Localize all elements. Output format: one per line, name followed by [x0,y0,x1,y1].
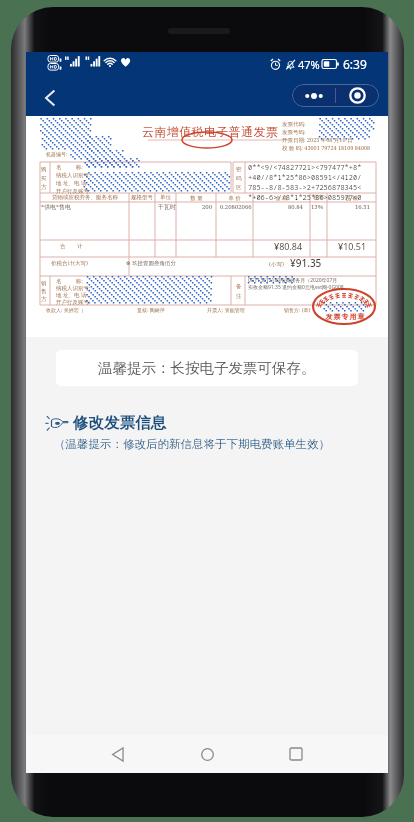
staticText: 金 额 [275,194,288,202]
staticText: 16.51 [355,203,370,211]
staticText: 货物或应税劳务、服务名称 [52,194,118,201]
staticText: 开户行及账号: [56,187,91,195]
staticText: 云南增值税电子普通发票 [142,124,279,139]
staticText: 千瓦时 [158,203,176,211]
staticText: ¥80.84 [274,240,303,252]
staticText: 区 [236,184,242,191]
staticText: 方 [41,296,47,303]
staticText: 名 称: [56,163,83,171]
staticText: 发票代码: [282,120,306,128]
staticText: 数 量 [190,194,203,202]
staticText: 开票人: 资能管理 [207,307,245,314]
staticText: *供电*售电 [41,203,72,211]
staticText: 发票专用章 [325,312,365,321]
staticText: 售 [41,288,47,295]
staticText: 注 [236,293,242,300]
staticText: 实收金额91.35 退约金额0元电evt网-0G008 [248,284,344,291]
staticText: 开票日期: 2023 年08 月10 日 [282,136,353,144]
staticText: 发票号码: [282,128,306,136]
staticText: 密 [236,166,242,173]
staticText: +40//8*1*25*86>08591</4120/ [248,173,362,183]
staticText: 价税合计(大写) [51,259,88,267]
staticText: 单位 [160,194,171,201]
staticText: 名 称: [56,277,83,285]
staticText: 0**<9/<74827721><797477*+8* [248,163,362,173]
staticText: 地 址、电 话: [56,179,88,187]
staticText: 校 验 码: 43001 79724 18109 84008 [282,144,371,152]
staticText: 地 址、电 话: [56,291,88,299]
button[interactable]: 修改发票信息 [48,413,166,433]
staticText: 备 [236,283,242,290]
staticText: 税率 [313,194,324,201]
staticText: 税 额 [345,194,358,202]
staticText: *+06-6>//8*1*25*86>085977<0 [248,193,362,203]
staticText: ¥91.35 [290,256,322,270]
staticText: 200 [202,203,213,211]
staticText: 47% [298,57,320,72]
button[interactable]: Back [96,735,140,773]
staticText: 0.20802066 [220,203,252,211]
staticText: 开户行及账号: [56,298,91,306]
staticText: 785--8/8-583->2+7256878345< [248,183,362,193]
staticText: 收款人: 吴婷宏（ [46,307,84,314]
button[interactable]: Back [34,82,66,114]
staticText: 纳税人识别号: [56,171,91,179]
staticText: ¥10.51 [338,240,367,252]
staticText: 合 计 [60,242,83,250]
staticText: 温馨提示：长按电子发票可保存。 [98,359,316,377]
staticText: 纳税人识别号: [56,284,91,292]
staticText: 销 [41,280,47,287]
staticText: 购 [41,166,47,173]
button[interactable]: More options [292,84,379,107]
staticText: (小写) [269,260,284,268]
staticText: ⊗ 玖拾壹圆叁角伍分 [126,259,177,267]
staticText: （温馨提示：修改后的新信息将于下期电费账单生效） [54,437,330,451]
button[interactable]: Home [185,735,229,773]
staticText: 13% [311,203,324,211]
staticText: 机器编号: [46,151,68,158]
button[interactable]: Recent apps [274,735,318,773]
staticText: 0GT13612180电费账务月（2020年07月 [248,277,338,284]
staticText: 单 价 [228,194,241,202]
staticText: 规格型号 [131,194,153,201]
staticText: 买 [41,175,47,182]
staticText: 销售方: (章) [284,307,311,314]
staticText: 复核: 陶树萍 [137,307,165,314]
button[interactable]: 温馨提示：长按电子发票可保存。 [56,350,358,386]
staticText: 6:39 [343,56,367,72]
staticText: 方 [41,184,47,191]
staticText: 80.84 [288,203,303,211]
staticText: 码 [236,175,242,182]
staticText: 修改发票信息 [73,413,166,433]
